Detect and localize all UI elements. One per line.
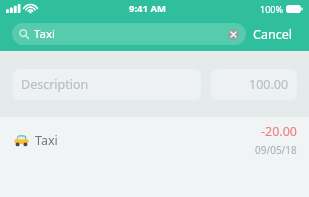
- staticText: 09/05/18: [255, 143, 297, 157]
- staticText: 9:41 AM: [129, 2, 166, 15]
- button[interactable]: Description: [13, 69, 201, 100]
- staticText: Taxi: [35, 132, 58, 149]
- staticText: Taxi: [34, 26, 55, 42]
- button[interactable]: Taxi: [0, 117, 309, 163]
- staticText: Cancel: [253, 26, 292, 43]
- button[interactable]: Cancel: [246, 22, 299, 47]
- staticText: Description: [21, 76, 89, 93]
- button[interactable]: Taxi: [12, 23, 246, 45]
- staticText: -20.00: [261, 123, 297, 140]
- staticText: 100.00: [249, 76, 289, 93]
- button[interactable]: Clear search: [228, 29, 239, 40]
- button[interactable]: 100.00: [211, 69, 297, 100]
- staticText: 100%: [260, 3, 283, 15]
